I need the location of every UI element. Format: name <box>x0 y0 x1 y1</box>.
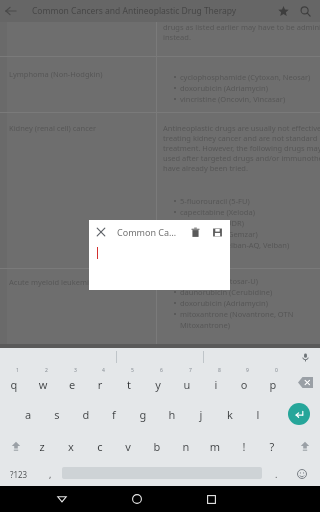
staticText: daunorubicin (Cerubidine) <box>180 287 273 297</box>
button[interactable]: x <box>59 432 83 462</box>
button[interactable]: 9 <box>232 366 256 396</box>
staticText: z <box>30 439 54 454</box>
staticText: l <box>246 407 270 422</box>
staticText: Acute myeloid leukemia <box>9 277 154 287</box>
button[interactable]: 0 <box>261 366 285 396</box>
staticText: cytarabine (Cytosar-U) <box>180 276 258 286</box>
button[interactable]: 3 <box>60 366 84 396</box>
staticText: 6-thioguanine (6-TG, Tabloid) <box>180 383 282 393</box>
button[interactable]: 7 <box>175 366 199 396</box>
button[interactable]: 5 <box>117 366 141 396</box>
button[interactable]: Voice input <box>296 348 314 366</box>
button[interactable]: Emoji <box>292 464 312 484</box>
staticText: b <box>145 439 169 454</box>
staticText: . <box>275 468 278 480</box>
staticText: 6 <box>160 367 163 374</box>
staticText: ? <box>260 439 284 454</box>
staticText: j <box>189 407 213 422</box>
staticText: Common Ca… <box>117 226 184 238</box>
button[interactable]: 6 <box>146 366 170 396</box>
button[interactable]: k <box>218 400 242 430</box>
staticText: c <box>88 439 112 454</box>
button[interactable]: Shift <box>7 437 25 455</box>
staticText: 6-mercaptopurine (6-MP, Purinethol) <box>180 372 309 382</box>
button[interactable]: h <box>160 400 184 430</box>
staticText: floxuridine (FUDR) <box>180 218 244 228</box>
button[interactable]: z <box>30 432 54 462</box>
staticText: doxorubicin (Adriamycin) <box>180 298 268 308</box>
button[interactable]: Favorite <box>272 0 294 22</box>
button[interactable]: Search <box>294 0 316 22</box>
staticText: o <box>232 377 256 392</box>
button[interactable]: j <box>189 400 213 430</box>
staticText: y <box>146 377 170 392</box>
staticText: Kidney (renal cell) cancer <box>9 123 154 133</box>
staticText: q <box>2 377 26 392</box>
button[interactable]: a <box>16 400 40 430</box>
staticText: p <box>261 377 285 392</box>
staticText: g <box>131 407 155 422</box>
staticText: 1 <box>16 367 19 374</box>
staticText: used after targeted drugs and/or immunot… <box>163 153 320 163</box>
button[interactable]: b <box>145 432 169 462</box>
staticText: capecitabine (Xeloda) <box>180 207 255 217</box>
staticText: a <box>16 407 40 422</box>
staticText: have already been tried. <box>163 163 248 173</box>
staticText: Common Cancers and Antineoplastic Drug T… <box>32 5 272 17</box>
staticText: treatment. However, the following drugs … <box>163 143 320 153</box>
staticText: vinblastine (Velban-AQ, Velban) <box>180 240 290 250</box>
staticText: m <box>203 439 227 454</box>
button[interactable]: Back <box>49 486 75 512</box>
staticText: u <box>175 377 199 392</box>
staticText: cyclophosphamide (Cytoxan, Neosar) <box>180 72 311 82</box>
button[interactable]: Back <box>0 0 22 22</box>
button[interactable]: g <box>131 400 155 430</box>
button[interactable]: 2 <box>31 366 55 396</box>
button[interactable]: Enter <box>288 403 310 425</box>
staticText: gemcitabine (Gemzar) <box>180 229 258 239</box>
staticText: doxorubicin (Adriamycin) <box>180 83 268 93</box>
button[interactable]: Close <box>89 220 113 244</box>
button[interactable]: 8 <box>204 366 228 396</box>
button[interactable]: ?123 <box>2 465 36 483</box>
button[interactable]: l <box>246 400 270 430</box>
button[interactable]: d <box>74 400 98 430</box>
staticText: n <box>174 439 198 454</box>
button[interactable]: Recents <box>198 486 224 512</box>
staticText: e <box>60 377 84 392</box>
button[interactable]: Backspace <box>297 376 313 388</box>
button[interactable]: 4 <box>88 366 112 396</box>
staticText: mitoxantrone (Novantrone, OTN <box>180 309 294 319</box>
button[interactable] <box>89 244 230 290</box>
staticText: 5 <box>131 367 134 374</box>
button[interactable]: ? <box>260 432 284 462</box>
staticText: vincristine (Oncovin, Vincasar) <box>180 94 286 104</box>
staticText: 2 <box>45 367 48 374</box>
staticText: ! <box>232 439 256 454</box>
button[interactable]: Delete <box>184 221 206 243</box>
staticText: Additional antineoplastic drugs that may… <box>163 341 320 351</box>
button[interactable]: Save <box>206 221 228 243</box>
button[interactable]: m <box>203 432 227 462</box>
button[interactable]: s <box>45 400 69 430</box>
staticText: i <box>204 377 228 392</box>
staticText: instead. <box>163 32 191 42</box>
staticText: f <box>102 407 126 422</box>
staticText: 5-fluorouracil (5-FU) <box>180 196 250 206</box>
button[interactable]: n <box>174 432 198 462</box>
staticText: w <box>31 377 55 392</box>
staticText: 8 <box>218 367 221 374</box>
button[interactable]: c <box>88 432 112 462</box>
button[interactable]: Shift <box>296 437 314 455</box>
staticText: treating kidney cancer and are not stand… <box>163 133 318 143</box>
button[interactable]: ! <box>232 432 256 462</box>
button[interactable]: , <box>40 465 60 483</box>
button[interactable]: f <box>102 400 126 430</box>
staticText: 3 <box>74 367 77 374</box>
button[interactable]: Home <box>124 486 150 512</box>
button[interactable]: v <box>116 432 140 462</box>
staticText: Lymphoma (Non-Hodgkin) <box>9 69 154 79</box>
button[interactable]: . <box>266 465 286 483</box>
button[interactable]: 1 <box>2 366 26 396</box>
